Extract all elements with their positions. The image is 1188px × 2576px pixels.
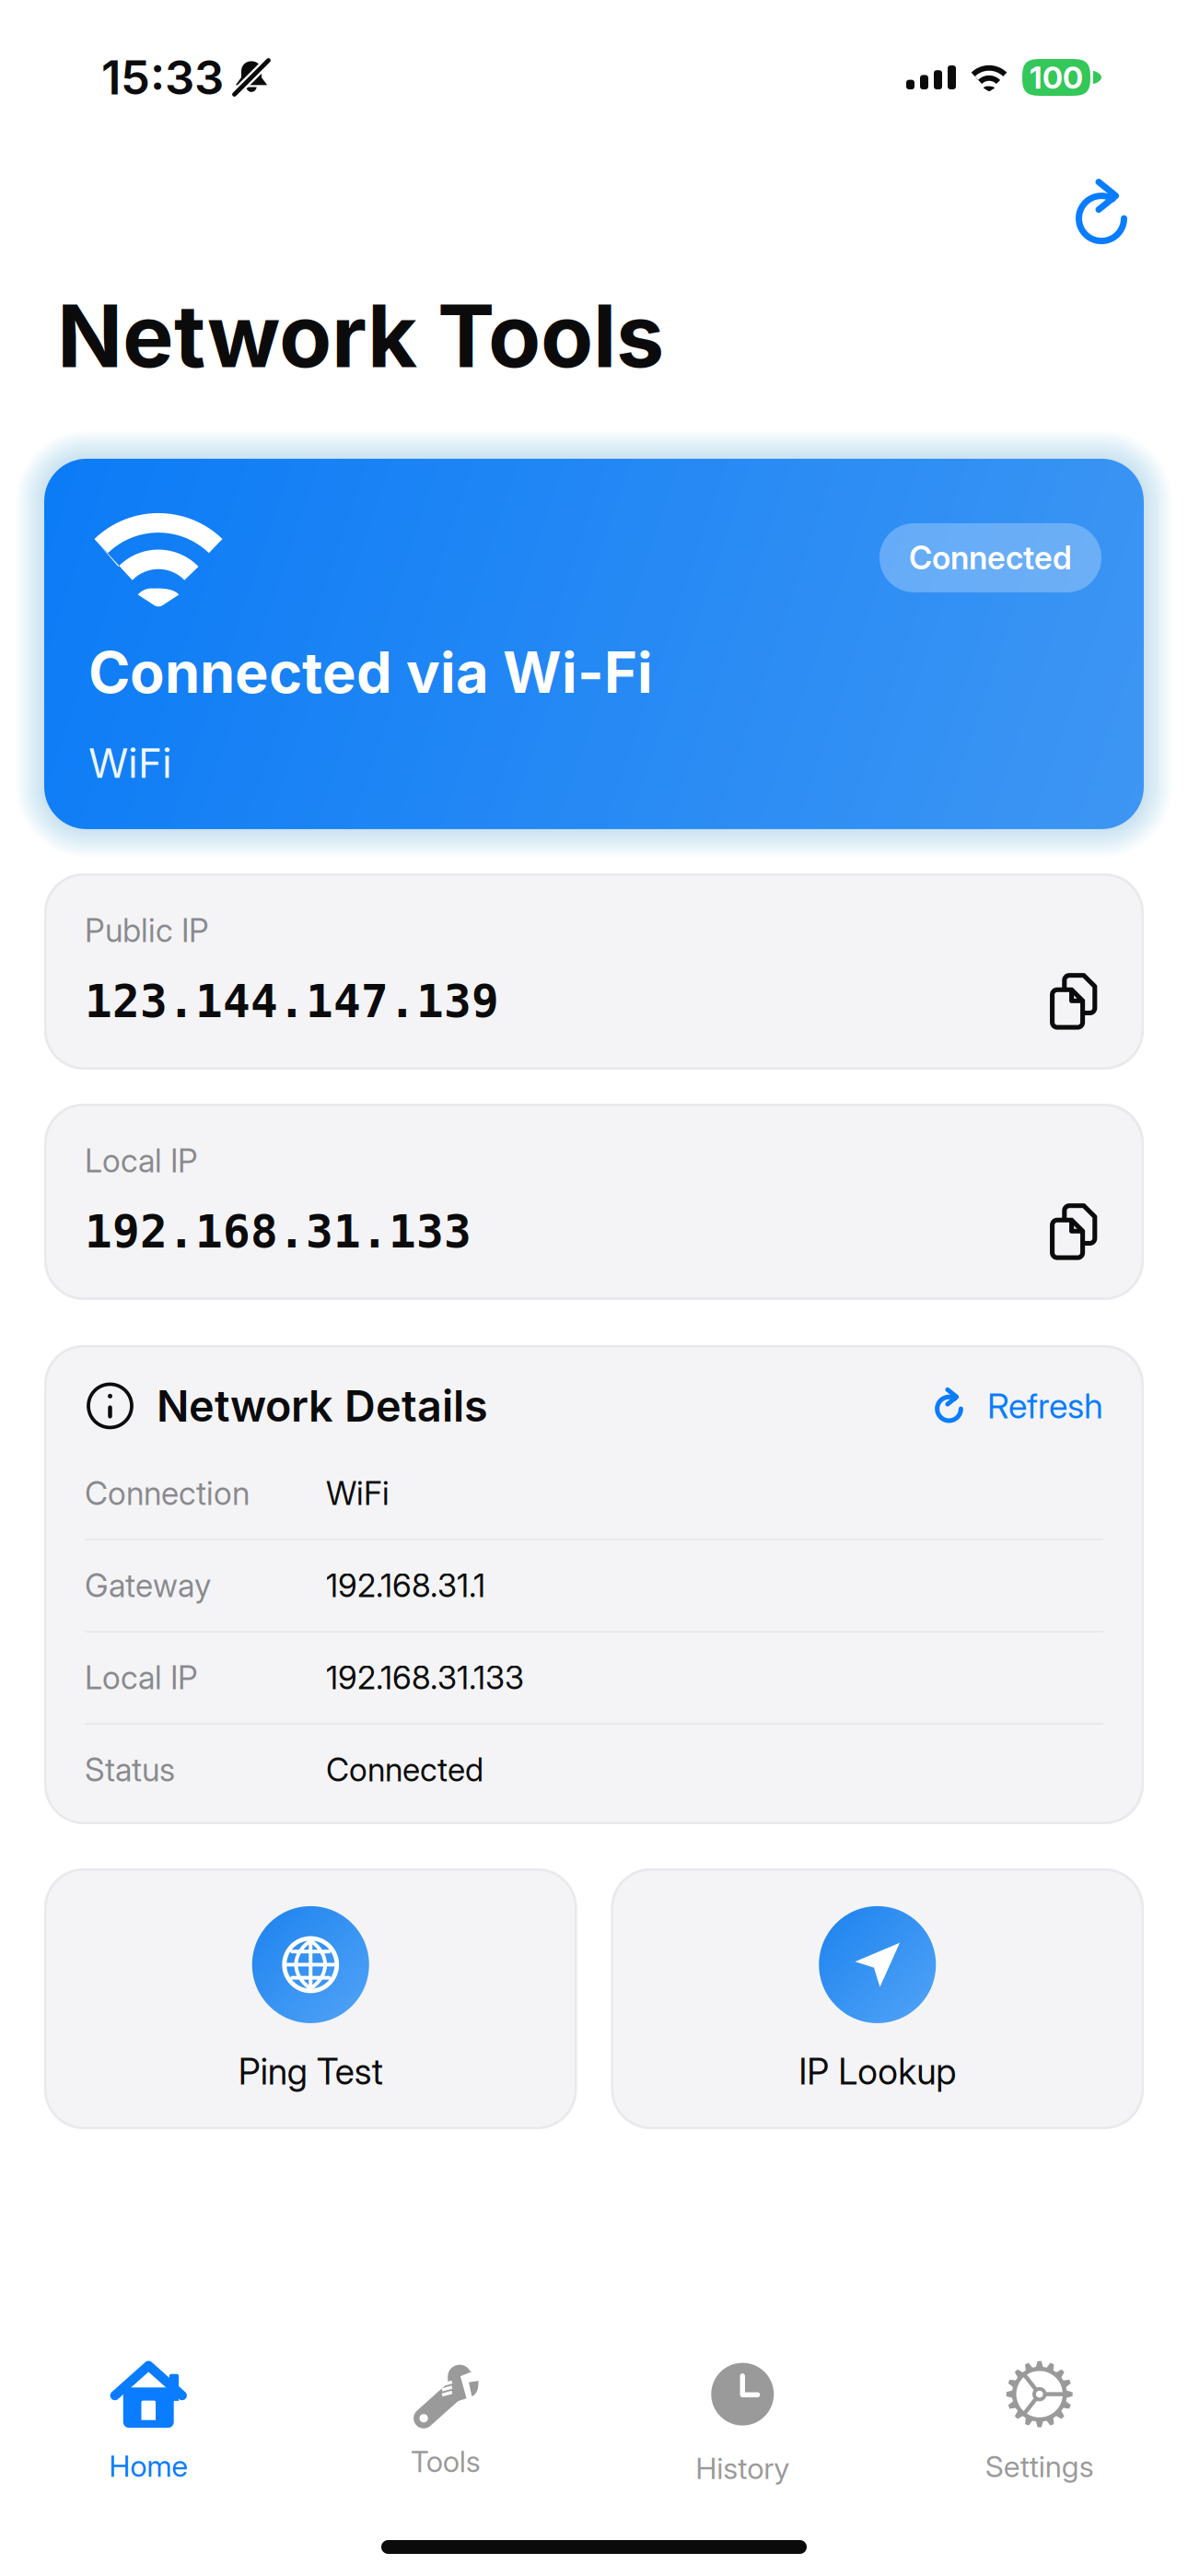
button[interactable]: Local IP <box>44 1104 1144 1300</box>
staticText: 123.144.147.139 <box>85 975 499 1028</box>
staticText: Tools <box>411 2443 481 2479</box>
button[interactable]: History <box>594 2357 891 2486</box>
staticText: WiFi <box>326 1474 390 1513</box>
staticText: WiFi <box>88 739 172 788</box>
staticText: Local IP <box>85 1141 198 1180</box>
staticText: Connected via Wi-Fi <box>88 638 653 706</box>
staticText: Ping Test <box>238 2050 383 2093</box>
button[interactable]: Refresh <box>1057 169 1146 257</box>
button[interactable]: Tools <box>297 2357 594 2486</box>
button[interactable]: Public IP <box>44 873 1144 1070</box>
button[interactable]: Refresh <box>930 1385 1103 1427</box>
staticText: Connected <box>909 539 1072 577</box>
staticText: Network Details <box>157 1380 488 1432</box>
button[interactable]: IP Lookup <box>611 1868 1144 2129</box>
button[interactable]: Home <box>0 2357 297 2486</box>
staticText: Gateway <box>85 1566 211 1605</box>
staticText: IP Lookup <box>799 2050 956 2093</box>
staticText: Network Tools <box>57 284 664 388</box>
staticText: 100 <box>1030 59 1083 96</box>
button[interactable]: Settings <box>891 2357 1188 2486</box>
button[interactable]: Ping Test <box>44 1868 577 2129</box>
staticText: Connected <box>326 1751 483 1789</box>
staticText: History <box>695 2450 789 2486</box>
staticText: Public IP <box>85 911 209 950</box>
staticText: 192.168.31.1 <box>326 1566 485 1605</box>
staticText: Home <box>109 2448 188 2484</box>
staticText: Settings <box>985 2448 1094 2484</box>
staticText: 192.168.31.133 <box>326 1658 524 1697</box>
staticText: 15:33 <box>101 49 224 106</box>
staticText: Refresh <box>987 1385 1103 1427</box>
staticText: Connection <box>85 1474 250 1513</box>
staticText: Local IP <box>85 1658 198 1697</box>
staticText: 192.168.31.133 <box>85 1205 472 1258</box>
staticText: Status <box>85 1751 175 1789</box>
